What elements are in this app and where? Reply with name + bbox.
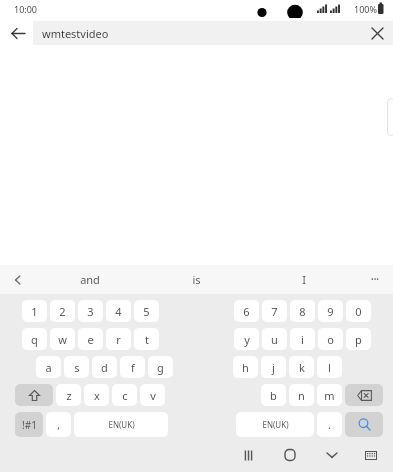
button[interactable]: s <box>64 356 89 378</box>
button[interactable]: v <box>140 384 165 406</box>
staticText: 9 <box>327 304 334 319</box>
staticText: w <box>58 332 67 347</box>
button[interactable]: 1 <box>22 300 47 322</box>
button[interactable]: Back <box>4 19 32 47</box>
button[interactable]: !#1 <box>15 412 43 437</box>
button[interactable]: h <box>233 356 258 378</box>
button[interactable]: i <box>290 328 315 350</box>
button[interactable]: Shift <box>15 384 53 406</box>
button[interactable]: f <box>120 356 145 378</box>
button[interactable]: x <box>84 384 109 406</box>
button[interactable]: I <box>250 265 357 294</box>
button[interactable]: 2 <box>50 300 75 322</box>
button[interactable]: c <box>112 384 137 406</box>
button[interactable]: e <box>78 328 103 350</box>
staticText: 4 <box>115 304 122 319</box>
button[interactable]: p <box>346 328 371 350</box>
button[interactable]: Search <box>345 412 383 437</box>
staticText: m <box>324 388 335 403</box>
button[interactable]: r <box>106 328 131 350</box>
button[interactable]: z <box>56 384 81 406</box>
button[interactable]: Previous <box>0 265 36 294</box>
staticText: l <box>328 360 331 375</box>
button[interactable]: t <box>134 328 159 350</box>
button[interactable]: EN(UK) <box>236 412 314 437</box>
button[interactable]: and <box>36 265 143 294</box>
button[interactable]: j <box>261 356 286 378</box>
staticText: t <box>145 332 149 347</box>
button[interactable]: q <box>22 328 47 350</box>
button[interactable]: a <box>36 356 61 378</box>
staticText: d <box>101 360 108 375</box>
staticText: f <box>131 360 135 375</box>
staticText: b <box>270 388 277 403</box>
button[interactable]: n <box>289 384 314 406</box>
button[interactable]: b <box>261 384 286 406</box>
button[interactable]: is <box>143 265 250 294</box>
staticText: h <box>242 360 249 375</box>
staticText: q <box>31 332 38 347</box>
staticText: 5 <box>143 304 150 319</box>
staticText: i <box>301 332 304 347</box>
staticText: 1 <box>31 304 38 319</box>
button[interactable]: EN(UK) <box>74 412 168 437</box>
staticText: 0 <box>355 304 362 319</box>
staticText: z <box>66 388 72 403</box>
button[interactable]: 6 <box>234 300 259 322</box>
staticText: 2 <box>59 304 66 319</box>
button[interactable]: w <box>50 328 75 350</box>
staticText: r <box>116 332 121 347</box>
button[interactable]: 5 <box>134 300 159 322</box>
staticText: 3 <box>87 304 94 319</box>
staticText: ••• <box>371 275 379 285</box>
button[interactable]: 0 <box>346 300 371 322</box>
staticText: u <box>271 332 278 347</box>
staticText: v <box>150 388 156 403</box>
staticText: p <box>355 332 362 347</box>
button[interactable]: m <box>317 384 342 406</box>
button[interactable]: d <box>92 356 117 378</box>
staticText: EN(UK) <box>262 419 289 430</box>
staticText: 100% <box>354 3 377 15</box>
staticText: wmtestvideo <box>42 26 109 41</box>
staticText: is <box>192 272 201 287</box>
button[interactable]: Hide keyboard <box>353 442 389 468</box>
button[interactable]: l <box>317 356 342 378</box>
button[interactable]: wmtestvideo <box>33 21 393 45</box>
staticText: y <box>244 332 250 347</box>
staticText: a <box>45 360 52 375</box>
staticText: . <box>328 418 331 432</box>
button[interactable]: 3 <box>78 300 103 322</box>
staticText: !#1 <box>22 418 37 432</box>
button[interactable]: Backspace <box>345 384 383 406</box>
staticText: 7 <box>271 304 278 319</box>
staticText: and <box>80 272 100 287</box>
button[interactable]: Recents <box>227 442 269 468</box>
staticText: EN(UK) <box>108 419 135 430</box>
staticText: 8 <box>299 304 306 319</box>
staticText: o <box>327 332 334 347</box>
button[interactable]: More options <box>357 265 393 294</box>
button[interactable]: o <box>318 328 343 350</box>
button[interactable]: k <box>289 356 314 378</box>
button[interactable]: Back <box>311 442 353 468</box>
staticText: n <box>298 388 305 403</box>
button[interactable]: 9 <box>318 300 343 322</box>
staticText: k <box>299 360 305 375</box>
staticText: I <box>302 272 306 287</box>
staticText: x <box>94 388 100 403</box>
staticText: e <box>87 332 94 347</box>
button[interactable]: 4 <box>106 300 131 322</box>
staticText: s <box>74 360 80 375</box>
button[interactable]: , <box>46 412 71 437</box>
button[interactable]: u <box>262 328 287 350</box>
button[interactable]: y <box>234 328 259 350</box>
staticText: g <box>157 360 164 375</box>
button[interactable]: . <box>317 412 342 437</box>
button[interactable]: Home <box>269 442 311 468</box>
button[interactable]: g <box>148 356 173 378</box>
staticText: 6 <box>243 304 250 319</box>
button[interactable]: 8 <box>290 300 315 322</box>
button[interactable]: Clear <box>365 21 389 45</box>
button[interactable]: 7 <box>262 300 287 322</box>
